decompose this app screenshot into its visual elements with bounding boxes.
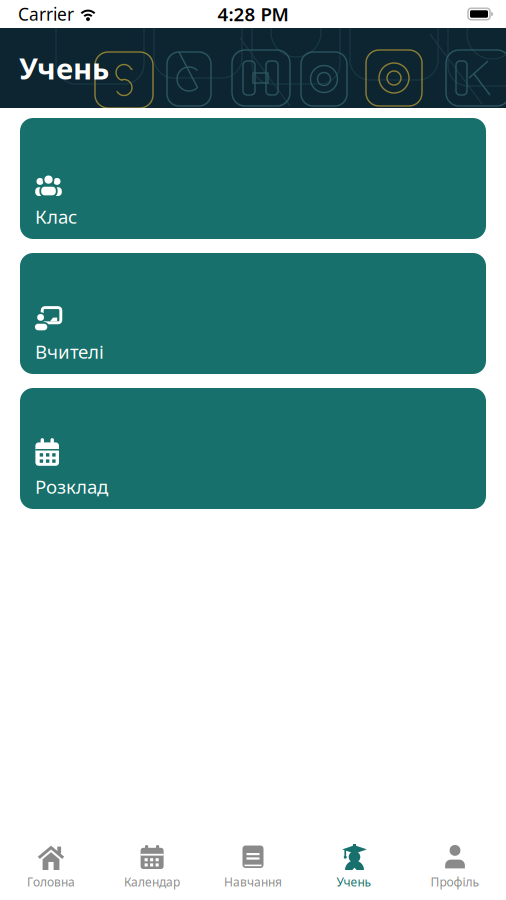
staticText: Вчителі xyxy=(35,339,104,364)
button[interactable]: Календар xyxy=(101,836,202,900)
staticText: Головна xyxy=(27,874,75,890)
staticText: 4:28 PM xyxy=(217,2,288,26)
staticText: Календар xyxy=(124,874,180,890)
staticText: Учень xyxy=(19,48,109,87)
staticText: Навчання xyxy=(224,874,282,890)
staticText: Профіль xyxy=(430,874,479,890)
button[interactable]: Навчання xyxy=(202,836,303,900)
button[interactable]: Клас xyxy=(20,118,486,239)
staticText: Клас xyxy=(35,204,77,229)
button[interactable]: Розклад xyxy=(20,388,486,509)
staticText: Carrier xyxy=(18,2,74,25)
button[interactable]: Головна xyxy=(0,836,101,900)
staticText: Учень xyxy=(336,874,371,890)
button[interactable]: Учень xyxy=(303,836,404,900)
button[interactable]: Профіль xyxy=(404,836,505,900)
staticText: Розклад xyxy=(35,474,108,499)
button[interactable]: Вчителі xyxy=(20,253,486,374)
